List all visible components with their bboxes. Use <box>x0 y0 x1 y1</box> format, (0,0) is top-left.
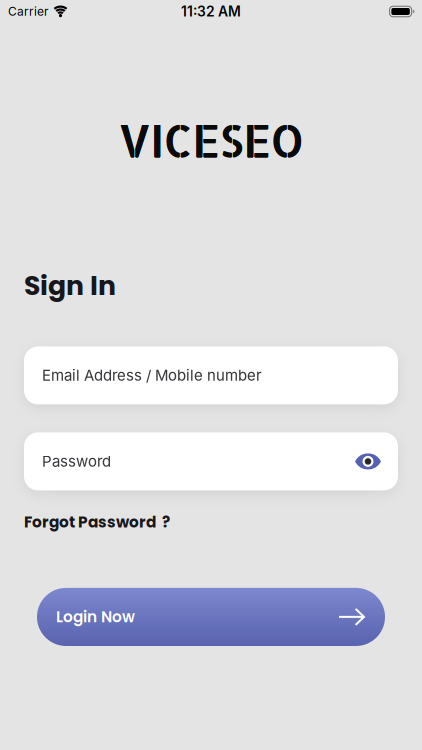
button[interactable]: Login Now <box>37 588 385 646</box>
staticText: Sign In <box>24 267 116 304</box>
staticText: Login Now <box>56 606 135 628</box>
staticText: 11:32 AM <box>181 3 241 20</box>
staticText: Carrier <box>8 4 49 19</box>
button[interactable]: Email Address / Mobile number <box>24 346 398 404</box>
staticText: Forgot Password ? <box>24 511 170 533</box>
staticText: VICESEO <box>119 111 305 168</box>
staticText: VICESEO <box>118 111 304 168</box>
staticText: Password <box>42 452 111 470</box>
button[interactable]: Forgot Password ? <box>0 511 422 533</box>
staticText: Email Address / Mobile number <box>42 366 262 384</box>
staticText: VICESEO <box>118 112 304 169</box>
button[interactable]: Show password <box>355 453 398 469</box>
button[interactable]: Password <box>24 432 398 490</box>
